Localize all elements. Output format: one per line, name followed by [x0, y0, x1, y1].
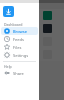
staticText: Dashboard: [4, 22, 23, 27]
button[interactable]: Browse: [1, 27, 38, 35]
button[interactable]: Settings: [1, 51, 38, 59]
staticText: Feeds: [13, 37, 24, 42]
other: Settings: [4, 52, 10, 58]
staticText: Share: [13, 71, 24, 76]
other: Share: [4, 70, 10, 76]
other: Browse: [4, 28, 10, 34]
button[interactable]: [0, 3, 39, 19]
staticText: Files: [13, 45, 22, 50]
button[interactable]: Feeds: [1, 35, 38, 43]
button[interactable]: Share: [1, 69, 38, 77]
other: Feeds: [4, 36, 10, 42]
staticText: Help: [4, 64, 12, 69]
staticText: Browse: [13, 29, 28, 34]
staticText: Settings: [13, 53, 29, 58]
button[interactable]: Files: [1, 43, 38, 51]
other: Files: [4, 44, 10, 50]
